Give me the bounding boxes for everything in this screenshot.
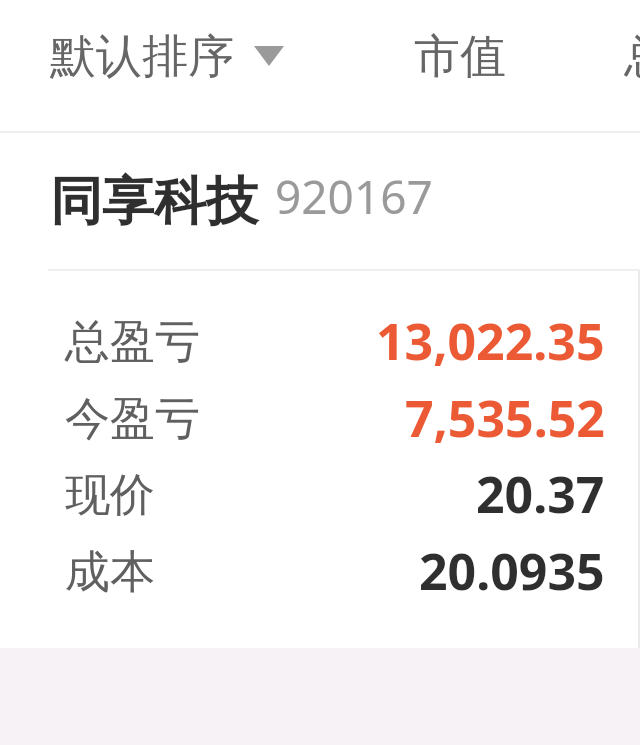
button[interactable]: 同享科技	[0, 133, 640, 269]
button[interactable]: 现价	[0, 457, 640, 533]
staticText: 920167	[275, 165, 433, 228]
staticText: 今盈亏	[65, 391, 200, 448]
staticText: 同享科技	[50, 169, 258, 235]
other: Sort order	[254, 46, 284, 66]
staticText: 7,535.52	[405, 384, 605, 452]
staticText: 总盈亏	[624, 28, 640, 86]
button[interactable]: 今盈亏	[0, 381, 640, 457]
staticText: 市值	[414, 28, 506, 86]
button[interactable]: 市值	[352, 0, 562, 131]
staticText: 默认排序	[50, 28, 234, 86]
staticText: 总盈亏	[65, 314, 200, 371]
button[interactable]: 总盈亏	[562, 0, 640, 131]
staticText: 20.37	[476, 460, 605, 528]
button[interactable]: 默认排序	[28, 0, 296, 131]
staticText: 成本	[65, 544, 155, 601]
staticText: 现价	[65, 467, 155, 524]
staticText: 20.0935	[419, 537, 605, 605]
staticText: 13,022.35	[376, 307, 605, 375]
button[interactable]: 成本	[0, 534, 640, 610]
button[interactable]: 总盈亏	[0, 304, 640, 380]
